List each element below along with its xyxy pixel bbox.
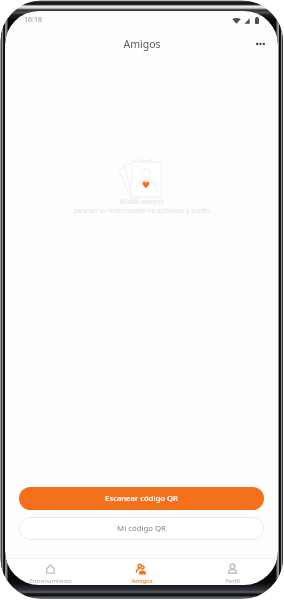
button[interactable]: Perfil: [187, 559, 278, 585]
button[interactable]: More options: [250, 34, 270, 54]
button[interactable]: Mi código QR: [19, 517, 264, 540]
staticText: Entrenamiento: [29, 577, 72, 585]
button[interactable]: Amigos: [96, 559, 187, 585]
staticText: Perfil: [225, 577, 240, 585]
staticText: Amigos: [131, 577, 153, 585]
staticText: Añadir amigos: [119, 197, 164, 206]
staticText: para ver su información de actividad y s…: [73, 206, 210, 215]
staticText: Mi código QR: [117, 523, 166, 534]
staticText: Amigos: [123, 37, 161, 51]
button[interactable]: Entrenamiento: [5, 559, 96, 585]
staticText: Escanear código QR: [105, 493, 178, 504]
button[interactable]: Escanear código QR: [19, 487, 264, 510]
staticText: 16:18: [24, 15, 42, 25]
